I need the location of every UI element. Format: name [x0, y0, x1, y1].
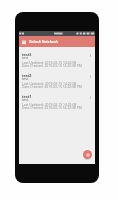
- button[interactable]: More options: [87, 73, 93, 79]
- staticText: test2: [22, 73, 32, 78]
- staticText: Last Updated: 2019-03-15 14:22:08: [22, 60, 77, 65]
- button[interactable]: Open navigation menu: [20, 38, 27, 45]
- staticText: test1: [22, 94, 32, 99]
- staticText: Default Notebook: [29, 39, 58, 44]
- staticText: test: [22, 55, 29, 60]
- button[interactable]: test3: [19, 52, 95, 73]
- button[interactable]: Add note: [83, 150, 92, 159]
- button[interactable]: test2: [19, 73, 95, 94]
- staticText: Date Created: 2019-03-15 14:22:08 PM: [22, 63, 82, 68]
- staticText: Last Updated: 2019-03-15 14:22:08: [22, 102, 77, 107]
- staticText: Date Created: 2019-03-15 14:22:08 PM: [22, 84, 82, 89]
- staticText: test: [22, 97, 29, 102]
- staticText: Date Created: 2019-03-15 14:22:08 PM: [22, 105, 82, 110]
- button[interactable]: test1: [19, 94, 95, 115]
- staticText: Last Updated: 2019-03-15 14:22:08: [22, 81, 77, 86]
- button[interactable]: More options: [87, 94, 93, 100]
- staticText: test: [22, 76, 29, 81]
- button[interactable]: More options: [87, 52, 93, 58]
- staticText: test3: [22, 52, 32, 57]
